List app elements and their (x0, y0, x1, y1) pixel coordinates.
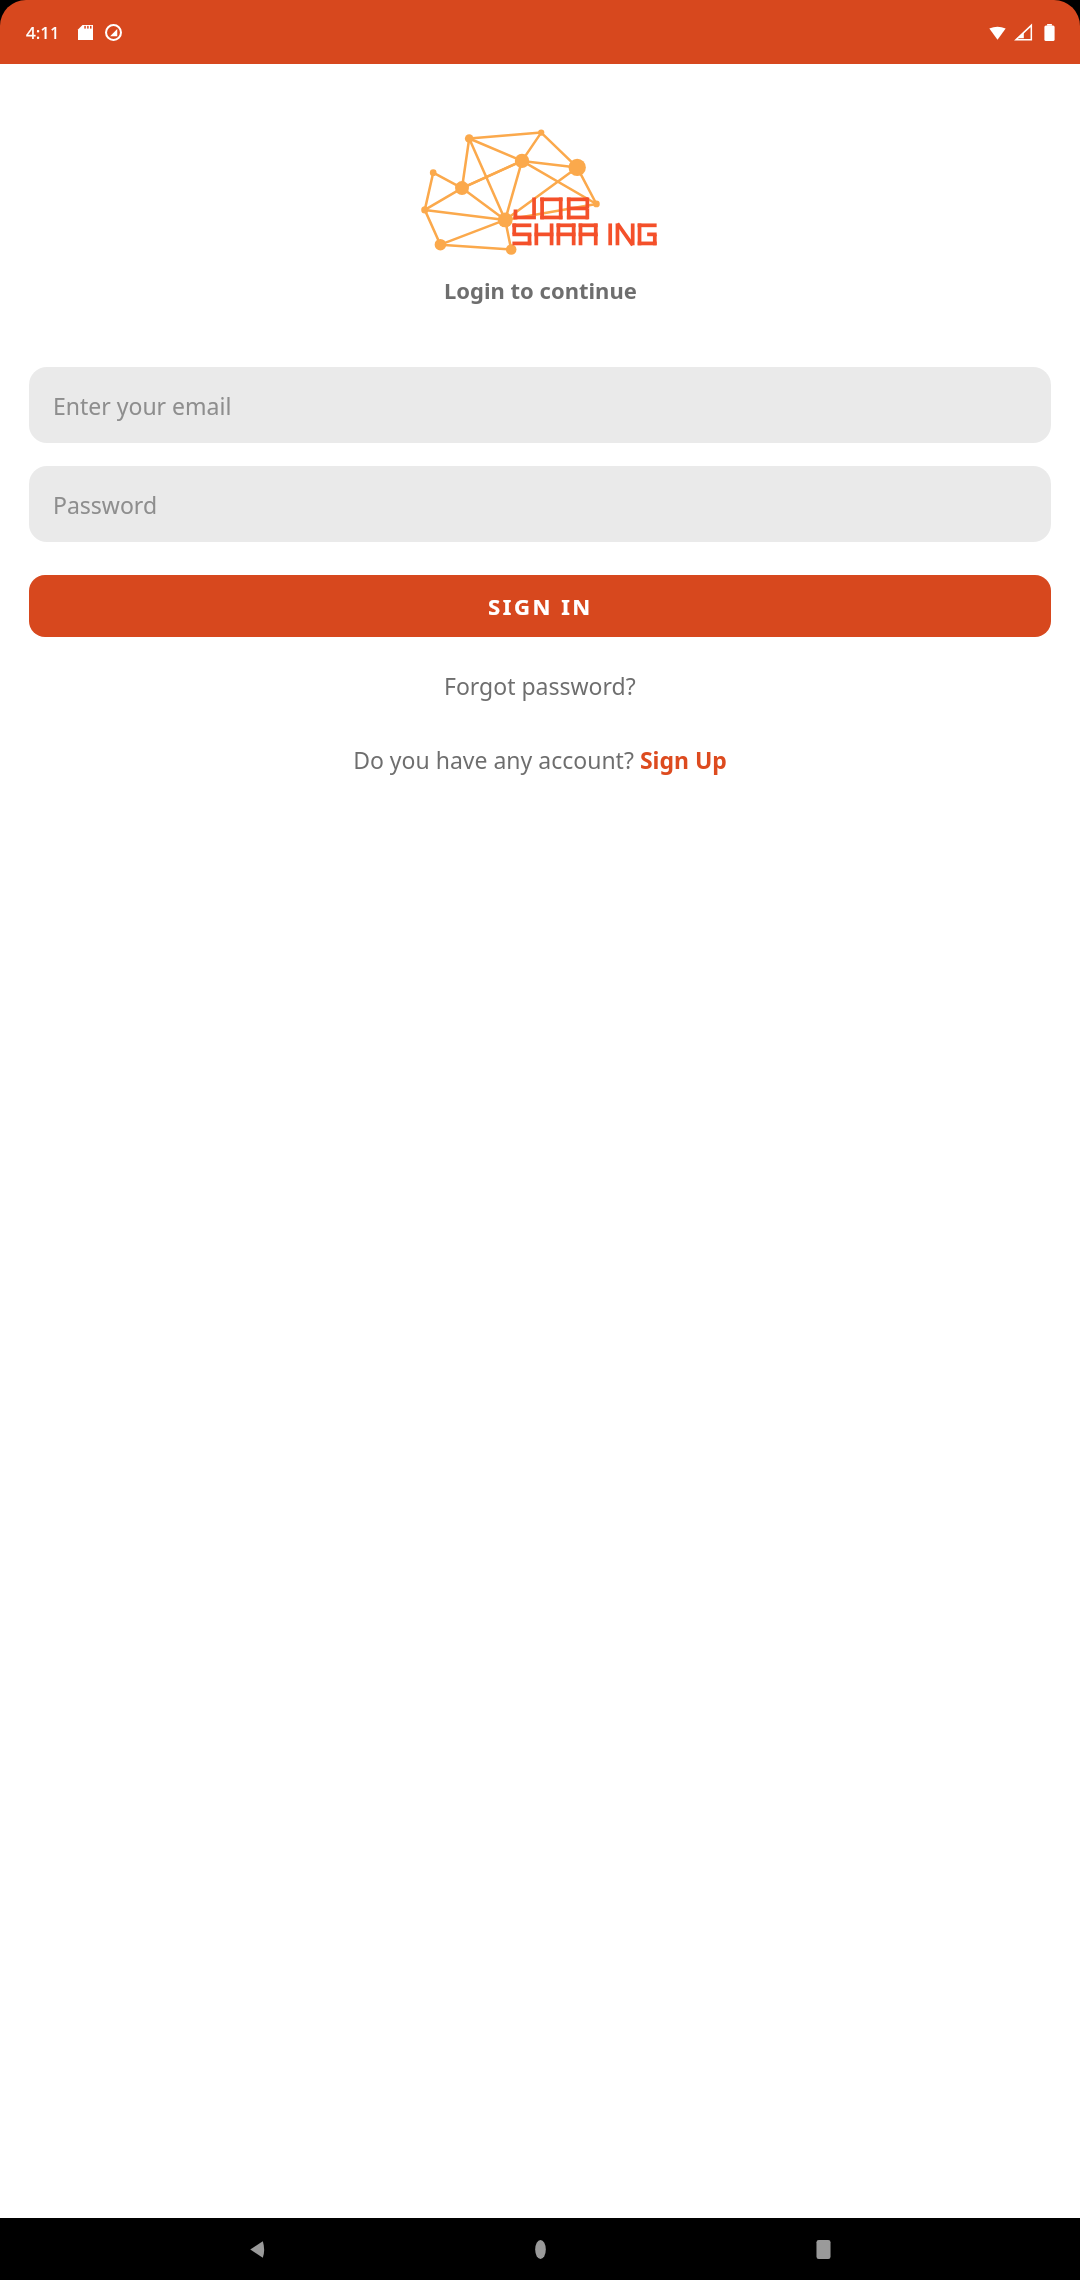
button[interactable]: Password (29, 466, 1051, 542)
button[interactable]: Do you have any account? Sign Up (337, 738, 743, 781)
staticText: Enter your email (53, 390, 232, 421)
button[interactable]: Home (514, 2223, 566, 2275)
button[interactable]: Recents (797, 2223, 849, 2275)
staticText: Login to continue (444, 275, 637, 305)
button[interactable]: Forgot password? (428, 664, 652, 707)
button[interactable]: Enter your email (29, 367, 1051, 443)
staticText: Forgot password? (444, 670, 636, 701)
staticText: 4:11 (26, 21, 60, 44)
button[interactable]: Back (231, 2223, 283, 2275)
button[interactable]: SIGN IN (29, 575, 1051, 637)
staticText: Do you have any account? Sign Up (353, 744, 727, 775)
staticText: SIGN IN (488, 591, 593, 621)
staticText: Password (53, 489, 158, 520)
